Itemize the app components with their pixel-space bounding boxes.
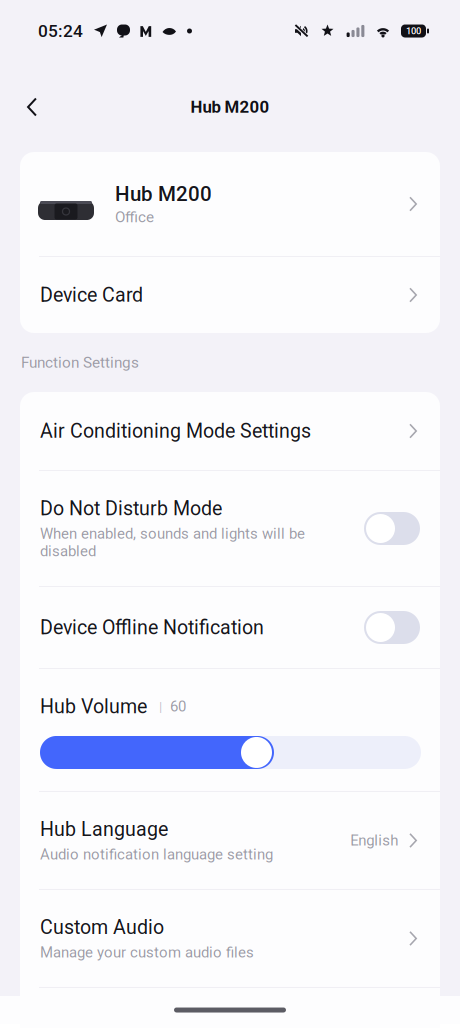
staticText: English bbox=[350, 832, 398, 849]
staticText: Office bbox=[115, 208, 154, 226]
staticText: Hub M200 bbox=[190, 97, 269, 117]
staticText: 60 bbox=[170, 698, 186, 715]
staticText: Hub Language bbox=[40, 818, 168, 841]
staticText: Device Offline Notification bbox=[40, 616, 264, 639]
staticText: Do Not Disturb Mode bbox=[40, 497, 222, 520]
staticText: When enabled, sounds and lights will be … bbox=[40, 525, 305, 560]
button[interactable]: Do Not Disturb Mode bbox=[20, 471, 440, 586]
staticText: 05:24 bbox=[38, 21, 83, 41]
staticText: Device Card bbox=[40, 283, 143, 306]
staticText: Custom Audio bbox=[40, 916, 164, 939]
staticText: Air Conditioning Mode Settings bbox=[40, 419, 311, 442]
staticText: Audio notification language setting bbox=[40, 846, 273, 863]
staticText: Hub M200 bbox=[115, 182, 212, 206]
button[interactable]: Device Offline Notification bbox=[20, 587, 440, 668]
staticText: | bbox=[159, 699, 162, 714]
button[interactable]: Hub M200 bbox=[20, 152, 440, 256]
staticText: Hub Volume bbox=[40, 695, 147, 718]
button[interactable]: Air Conditioning Mode Settings bbox=[20, 392, 440, 470]
button[interactable]: Device Card bbox=[20, 257, 440, 333]
button[interactable]: Custom Audio bbox=[20, 890, 440, 987]
staticText: Function Settings bbox=[21, 353, 139, 371]
staticText: Manage your custom audio files bbox=[40, 944, 254, 961]
button[interactable]: Hub Language bbox=[20, 792, 440, 889]
button[interactable]: Back bbox=[10, 85, 54, 129]
staticText: 100 bbox=[406, 25, 421, 36]
